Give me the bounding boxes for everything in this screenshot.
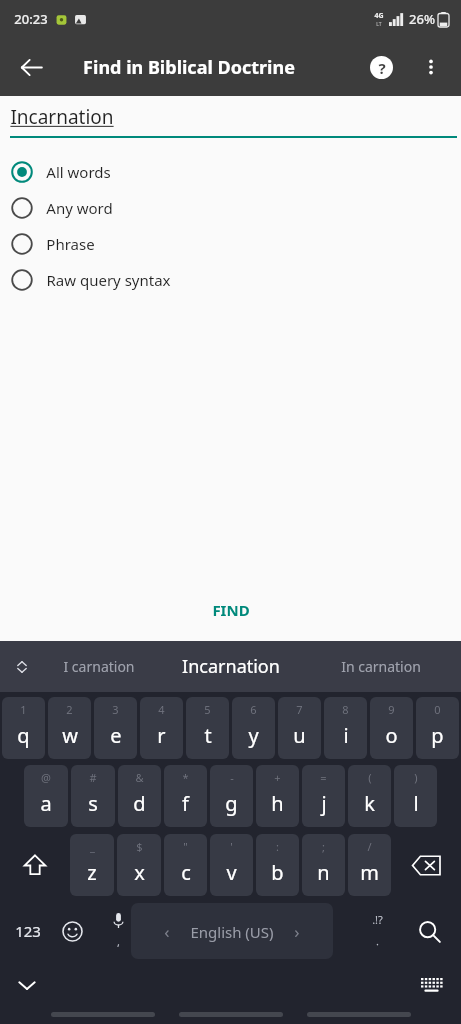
staticText: o <box>385 722 398 749</box>
button[interactable]: Raw query syntax <box>0 262 461 298</box>
button[interactable]: 8 <box>324 697 367 759</box>
button[interactable]: In carnation <box>321 641 441 692</box>
button[interactable]: 0 <box>416 697 459 759</box>
staticText: 2 <box>66 702 73 717</box>
button[interactable]: 4 <box>140 697 183 759</box>
staticText: n <box>317 859 330 886</box>
staticText: # <box>89 770 97 785</box>
button[interactable]: Help <box>359 45 403 89</box>
button[interactable]: Search <box>405 903 453 959</box>
button[interactable]: ‹ <box>131 903 333 959</box>
button[interactable]: All words <box>0 154 461 190</box>
staticText: - <box>230 770 234 785</box>
staticText: @ <box>41 770 51 785</box>
staticText: x <box>134 859 145 886</box>
button[interactable]: More options <box>409 45 453 89</box>
button[interactable]: ) <box>394 765 437 827</box>
button[interactable]: + <box>256 765 299 827</box>
staticText: ‹ <box>164 920 170 943</box>
button[interactable]: # <box>71 765 115 827</box>
staticText: 1 <box>20 702 27 717</box>
staticText: / <box>367 839 372 854</box>
staticText: t <box>204 722 212 749</box>
staticText: Raw query syntax <box>46 270 171 290</box>
staticText: l <box>413 790 419 817</box>
staticText: 26% <box>409 10 435 28</box>
staticText: · <box>376 936 379 951</box>
button[interactable]: - <box>210 765 253 827</box>
button[interactable]: Voice input <box>96 903 140 959</box>
button[interactable]: " <box>164 834 207 896</box>
staticText: All words <box>46 162 111 182</box>
button[interactable]: Hide keyboard <box>6 964 48 1006</box>
button[interactable]: _ <box>70 834 114 896</box>
staticText: e <box>110 722 122 749</box>
button[interactable]: .!? <box>355 903 399 959</box>
button[interactable]: Back <box>8 44 54 90</box>
staticText: 0 <box>434 702 441 717</box>
button[interactable]: Phrase <box>0 226 461 262</box>
staticText: Incarnation <box>10 104 114 130</box>
staticText: z <box>87 859 97 886</box>
button[interactable]: Expand suggestions <box>6 651 38 683</box>
button[interactable]: 3 <box>94 697 137 759</box>
staticText: g <box>225 790 238 817</box>
staticText: Any word <box>46 198 113 218</box>
button[interactable]: Keyboard layout <box>411 964 453 1006</box>
button[interactable]: Incarnation <box>161 641 301 692</box>
staticText: p <box>431 722 444 749</box>
staticText: c <box>181 859 191 886</box>
button[interactable]: I carnation <box>40 641 158 692</box>
staticText: & <box>135 770 144 785</box>
staticText: English (US) <box>190 922 274 942</box>
staticText: 20:23 <box>14 10 48 28</box>
button[interactable]: $ <box>117 834 161 896</box>
button[interactable]: 9 <box>370 697 413 759</box>
staticText: Incarnation <box>182 654 280 679</box>
button[interactable]: 6 <box>232 697 275 759</box>
button[interactable]: Any word <box>0 190 461 226</box>
button[interactable]: = <box>302 765 345 827</box>
button[interactable]: & <box>118 765 161 827</box>
staticText: = <box>320 770 327 785</box>
button[interactable]: ( <box>348 765 391 827</box>
staticText: 4G <box>374 11 384 21</box>
staticText: j <box>321 790 327 817</box>
button[interactable]: 5 <box>186 697 229 759</box>
staticText: $ <box>136 839 143 854</box>
staticText: 8 <box>342 702 349 717</box>
staticText: ( <box>368 770 372 785</box>
staticText: k <box>364 790 375 817</box>
staticText: i <box>343 722 349 749</box>
button[interactable]: FIND <box>0 588 461 632</box>
button[interactable]: 7 <box>278 697 321 759</box>
staticText: .!? <box>372 912 383 927</box>
staticText: Find in Biblical Doctrine <box>83 55 295 80</box>
staticText: 9 <box>388 702 395 717</box>
button[interactable]: 123 <box>4 903 52 959</box>
staticText: I carnation <box>63 657 135 676</box>
staticText: " <box>183 839 188 854</box>
button[interactable]: 1 <box>2 697 45 759</box>
button[interactable]: 2 <box>48 697 91 759</box>
staticText: + <box>274 770 281 785</box>
button[interactable]: ; <box>302 834 345 896</box>
staticText: Phrase <box>46 234 95 254</box>
button[interactable]: Backspace <box>391 834 461 896</box>
button[interactable]: * <box>164 765 207 827</box>
staticText: ) <box>414 770 418 785</box>
staticText: s <box>88 790 98 817</box>
button[interactable]: Emoji <box>50 903 94 959</box>
staticText: , <box>117 934 120 949</box>
staticText: FIND <box>212 600 250 620</box>
button[interactable]: : <box>256 834 299 896</box>
button[interactable]: @ <box>24 765 68 827</box>
button[interactable]: Shift <box>0 834 70 896</box>
staticText: 3 <box>112 702 119 717</box>
button[interactable]: ' <box>210 834 253 896</box>
staticText: 6 <box>250 702 257 717</box>
button[interactable]: / <box>348 834 391 896</box>
